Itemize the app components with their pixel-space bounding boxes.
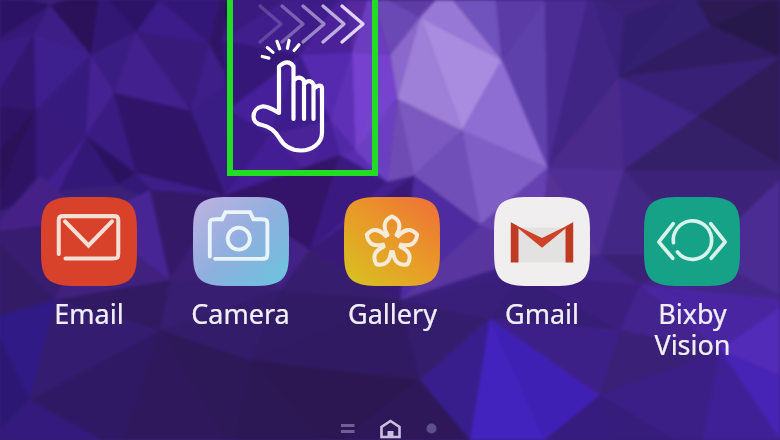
- button[interactable]: Gmail: [494, 197, 590, 332]
- button[interactable]: Gallery: [344, 197, 440, 332]
- button[interactable]: Camera: [191, 197, 290, 332]
- button[interactable]: Bixby Vision: [644, 197, 740, 363]
- button[interactable]: Back: [412, 412, 456, 440]
- button[interactable]: Recents: [324, 412, 368, 440]
- staticText: Gmail: [505, 295, 579, 332]
- staticText: Bixby Vision: [654, 295, 731, 363]
- staticText: Gallery: [348, 295, 437, 332]
- button[interactable]: Home: [368, 412, 412, 440]
- staticText: Camera: [191, 295, 290, 332]
- staticText: Email: [54, 295, 124, 332]
- button[interactable]: Email: [41, 197, 137, 332]
